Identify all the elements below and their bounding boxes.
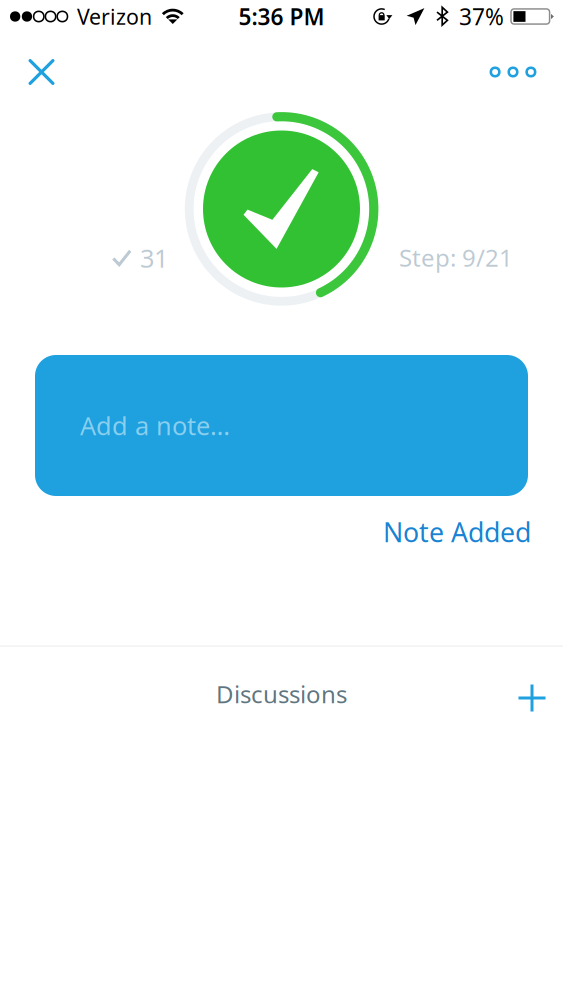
button[interactable]: Add a note… (35, 355, 528, 496)
staticText: Add a note… (80, 409, 230, 442)
staticText: 31 (140, 241, 168, 275)
button[interactable]: New discussion (505, 671, 558, 724)
staticText: Step: 9/21 (399, 242, 513, 273)
staticText: 5:36 PM (238, 1, 324, 31)
staticText: Note Added (383, 514, 531, 550)
button[interactable]: More options (477, 54, 549, 90)
button[interactable]: Close (14, 45, 68, 99)
staticText: Verizon (77, 2, 152, 31)
staticText: 37% (459, 1, 504, 31)
staticText: Discussions (216, 678, 347, 710)
button[interactable]: Note Added (374, 505, 540, 559)
